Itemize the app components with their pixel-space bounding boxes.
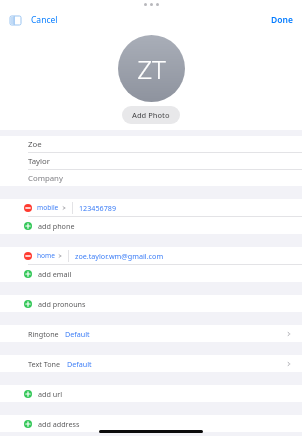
staticText: home [37,251,55,260]
button[interactable]: Contact photo [118,35,185,102]
staticText: Default [65,329,90,339]
staticText: Ringtone [28,329,59,339]
button[interactable]: Done [268,12,296,28]
staticText: Zoe [28,139,42,150]
button[interactable]: Remove home [0,247,302,264]
staticText: 123456789 [79,203,117,213]
button[interactable]: add address [0,415,302,432]
staticText: Default [67,359,92,369]
staticText: Text Tone [28,359,61,369]
staticText: add url [38,389,63,399]
button[interactable]: Zoe [0,136,302,152]
button[interactable]: Text Tone [0,355,302,372]
staticText: mobile [37,203,59,212]
button[interactable]: Company [0,170,302,186]
staticText: Cancel [31,14,58,26]
staticText: zoe.taylor.wm@gmail.com [75,251,164,261]
button[interactable]: Show sidebar [6,11,24,29]
button[interactable]: Cancel [28,12,61,28]
staticText: Done [271,14,293,26]
staticText: add phone [38,221,75,231]
staticText: Add Photo [132,110,170,120]
button[interactable]: Taylor [0,153,302,169]
other: Remove home [24,252,32,260]
button[interactable]: Add Photo [122,106,180,124]
button[interactable]: add url [0,385,302,402]
other: Remove mobile [24,204,32,212]
button[interactable]: add email [0,265,302,282]
staticText: add address [38,419,80,429]
button[interactable]: add pronouns [0,295,302,312]
staticText: ZT [137,51,166,86]
button[interactable]: add phone [0,217,302,234]
button[interactable]: Ringtone [0,325,302,342]
button[interactable]: Remove mobile [0,199,302,216]
staticText: add email [38,269,72,279]
staticText: Company [28,173,63,184]
staticText: add pronouns [38,299,86,309]
staticText: Taylor [28,156,51,167]
